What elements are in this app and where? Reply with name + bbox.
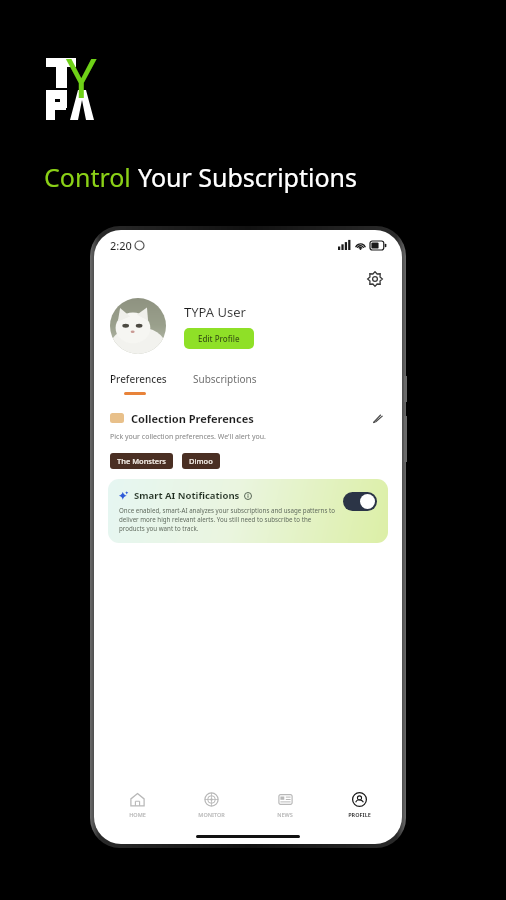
staticText: PROFILE bbox=[348, 811, 371, 818]
button[interactable]: Dimoo bbox=[182, 453, 220, 469]
button[interactable]: Subscriptions bbox=[193, 372, 257, 386]
button[interactable]: HOME bbox=[106, 788, 168, 822]
staticText: 2:20 bbox=[110, 238, 132, 253]
staticText: MONITOR bbox=[198, 811, 225, 818]
staticText: Dimoo bbox=[189, 456, 213, 466]
button[interactable]: PROFILE bbox=[328, 788, 390, 822]
button[interactable]: Profile photo bbox=[110, 298, 166, 354]
button[interactable]: Preferences bbox=[110, 372, 167, 386]
button[interactable]: Edit collection preferences bbox=[368, 409, 386, 427]
button[interactable]: Edit Profile bbox=[184, 328, 254, 349]
staticText: NEWS bbox=[277, 811, 293, 818]
staticText: Smart AI Notifications bbox=[134, 489, 240, 502]
staticText: Control bbox=[44, 160, 138, 194]
staticText: HOME bbox=[129, 811, 146, 818]
button[interactable]: Smart AI Notifications bbox=[108, 479, 388, 543]
button[interactable]: Smart AI Notifications toggle bbox=[343, 492, 377, 511]
staticText: Subscriptions bbox=[193, 372, 257, 386]
button[interactable]: The Monsters bbox=[110, 453, 173, 469]
staticText: Edit Profile bbox=[198, 333, 240, 344]
staticText: Preferences bbox=[110, 372, 167, 386]
button[interactable]: NEWS bbox=[254, 788, 316, 822]
staticText: The Monsters bbox=[117, 456, 166, 466]
staticText: TYPA User bbox=[184, 303, 246, 321]
button[interactable]: MONITOR bbox=[180, 788, 242, 822]
staticText: Once enabled, smart-AI analyzes your sub… bbox=[119, 506, 335, 533]
staticText: Y bbox=[66, 40, 97, 114]
staticText: Your Subscriptions bbox=[138, 160, 358, 194]
staticText: Pick your collection preferences. We'll … bbox=[110, 432, 266, 442]
staticText: Collection Preferences bbox=[131, 411, 254, 426]
button[interactable]: Settings bbox=[362, 266, 388, 292]
